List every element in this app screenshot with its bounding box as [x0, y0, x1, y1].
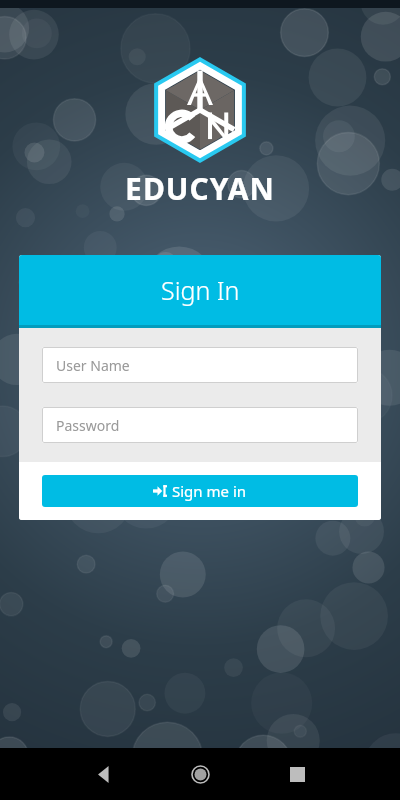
button[interactable]: Sign me in: [42, 475, 358, 507]
staticText: Password: [56, 416, 120, 435]
button[interactable]: Password: [42, 407, 358, 443]
button[interactable]: Sign In: [19, 255, 381, 325]
staticText: EDUCYAN: [125, 168, 275, 209]
button[interactable]: Recent apps: [277, 754, 317, 794]
staticText: User Name: [56, 356, 130, 375]
button[interactable]: Home: [180, 754, 220, 794]
staticText: Sign me in: [172, 481, 247, 501]
button[interactable]: Back: [84, 754, 124, 794]
button[interactable]: User Name: [42, 347, 358, 383]
staticText: Sign In: [161, 273, 240, 307]
